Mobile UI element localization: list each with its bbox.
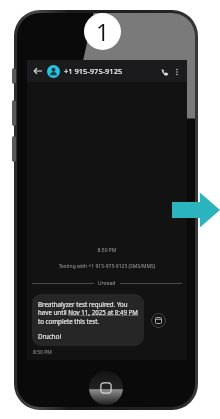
button[interactable]: Call <box>158 65 171 78</box>
button[interactable]: Home <box>89 371 123 405</box>
staticText: Unread <box>98 280 116 287</box>
button[interactable]: More options <box>171 66 182 77</box>
staticText: 1 <box>96 16 110 47</box>
button[interactable]: Add to calendar <box>151 313 166 328</box>
staticText: 8:50 PM <box>27 247 187 254</box>
staticText: +1 915-975-9125 <box>64 66 123 76</box>
button[interactable]: Contact avatar <box>47 65 60 78</box>
button[interactable]: Back <box>32 65 44 77</box>
staticText: 8:50 PM <box>33 349 52 356</box>
staticText: Texting with +1 915-975-9125 (SMS/MMS) <box>27 263 187 270</box>
staticText: Druchol <box>38 332 62 340</box>
button[interactable]: Breathalyzer test required. You have unt… <box>32 294 144 346</box>
staticText: Breathalyzer test required. You have unt… <box>38 300 138 325</box>
button[interactable]: Next <box>172 190 220 230</box>
